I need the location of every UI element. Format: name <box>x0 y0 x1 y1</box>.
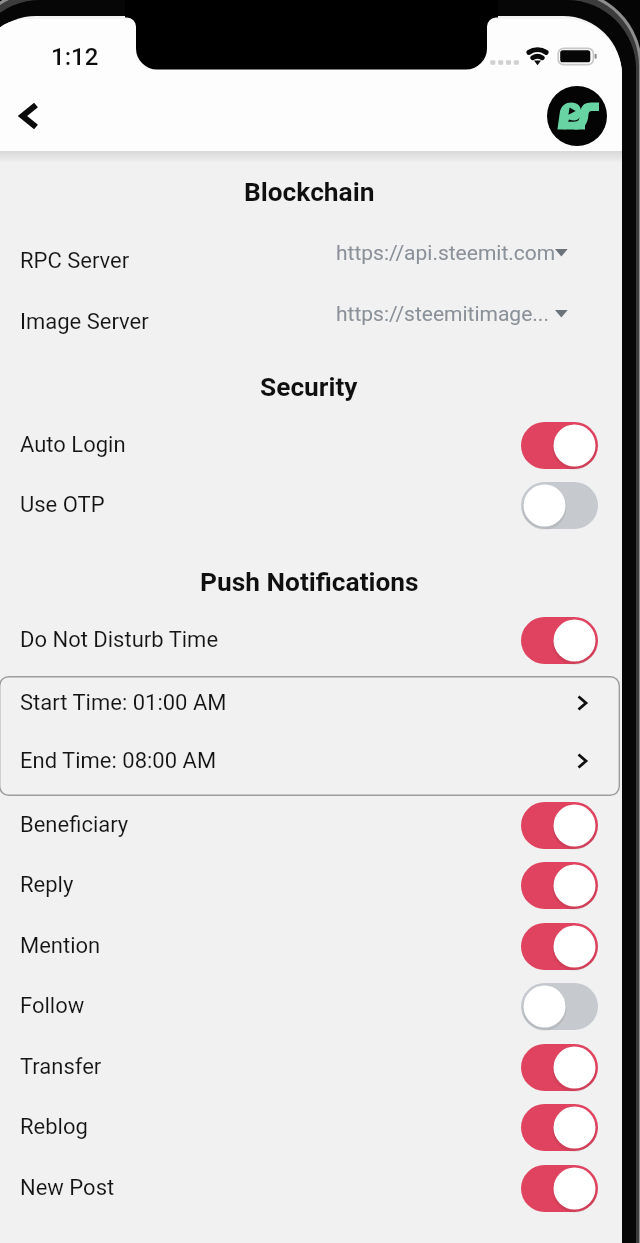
button[interactable]: New Post <box>0 1158 622 1218</box>
staticText: Blockchain <box>244 177 375 208</box>
button[interactable]: Profile <box>547 86 607 146</box>
button[interactable]: End Time: 08:00 AM <box>0 746 619 776</box>
staticText: New Post <box>20 1175 115 1201</box>
staticText: Follow <box>20 993 85 1019</box>
staticText: Reply <box>20 872 74 898</box>
button[interactable]: Image Server <box>0 292 622 352</box>
staticText: 1:12 <box>51 43 99 71</box>
staticText: Push Notifications <box>200 567 419 598</box>
button[interactable]: Use OTP <box>0 475 622 535</box>
button[interactable]: Follow <box>0 976 622 1036</box>
button[interactable]: Back <box>4 91 54 141</box>
staticText: Do Not Disturb Time <box>20 627 219 653</box>
button[interactable]: Beneficiary <box>0 795 622 855</box>
staticText: https://api.steemit.com <box>336 241 556 266</box>
button[interactable]: RPC Server <box>0 231 622 291</box>
button[interactable]: Do Not Disturb Time <box>0 610 622 670</box>
staticText: Security <box>260 372 358 403</box>
staticText: Start Time: 01:00 AM <box>20 690 227 716</box>
staticText: Mention <box>20 933 101 959</box>
staticText: Transfer <box>20 1054 102 1080</box>
button[interactable]: Mention <box>0 916 622 976</box>
staticText: https://steemitimage... <box>336 302 549 327</box>
staticText: Image Server <box>20 309 149 335</box>
staticText: RPC Server <box>20 248 130 274</box>
staticText: Beneficiary <box>20 812 129 838</box>
button[interactable]: Auto Login <box>0 415 622 475</box>
staticText: Reblog <box>20 1114 88 1140</box>
button[interactable]: Start Time: 01:00 AM <box>0 688 619 718</box>
button[interactable]: Reply <box>0 855 622 915</box>
button[interactable]: Reblog <box>0 1097 622 1157</box>
button[interactable]: Transfer <box>0 1037 622 1097</box>
staticText: Auto Login <box>20 432 126 458</box>
staticText: Use OTP <box>20 492 105 518</box>
staticText: End Time: 08:00 AM <box>20 748 217 774</box>
